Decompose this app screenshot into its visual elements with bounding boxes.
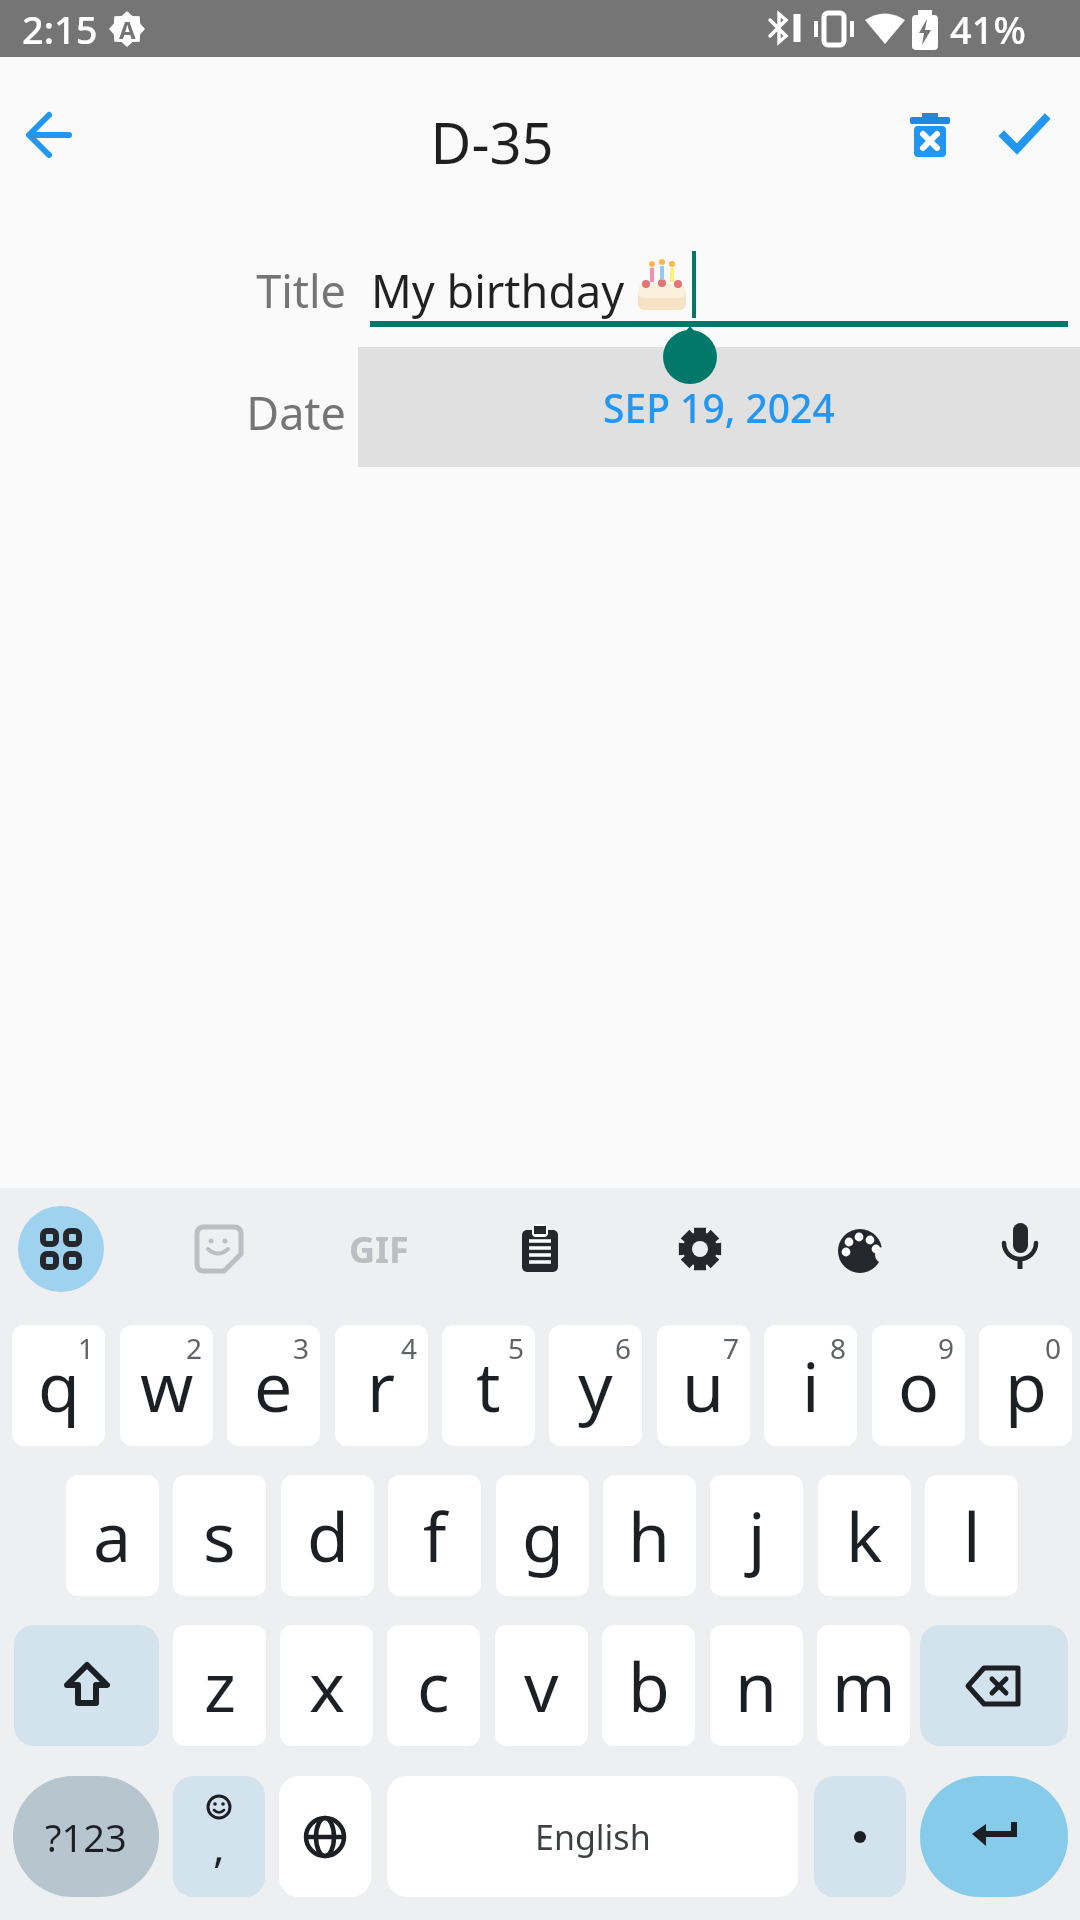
button[interactable] — [920, 1776, 1068, 1897]
button[interactable]: a — [66, 1475, 159, 1596]
staticText: q — [38, 1339, 80, 1432]
staticText: f — [423, 1489, 447, 1582]
staticText: j — [748, 1489, 766, 1582]
staticText: , — [213, 1815, 225, 1875]
button[interactable] — [14, 100, 84, 170]
staticText: d — [307, 1489, 349, 1582]
staticText: x — [309, 1639, 345, 1732]
button[interactable] — [990, 100, 1060, 170]
button[interactable]: , — [173, 1776, 265, 1897]
button[interactable] — [176, 1206, 262, 1292]
button[interactable]: m — [817, 1625, 910, 1746]
button[interactable]: e — [227, 1325, 320, 1446]
staticText: Title — [0, 260, 346, 321]
button[interactable] — [895, 100, 965, 170]
staticText: v — [524, 1639, 559, 1732]
staticText: b — [628, 1639, 670, 1732]
button[interactable]: p — [979, 1325, 1072, 1446]
staticText: e — [254, 1339, 293, 1432]
button[interactable]: k — [818, 1475, 911, 1596]
button[interactable] — [817, 1206, 903, 1292]
staticText: i — [802, 1339, 820, 1432]
staticText: 1 — [78, 1329, 95, 1367]
button[interactable]: x — [280, 1625, 373, 1746]
staticText: c — [417, 1639, 450, 1732]
staticText: 6 — [615, 1329, 632, 1367]
staticText: 8 — [830, 1329, 847, 1367]
staticText: y — [578, 1339, 613, 1432]
button[interactable] — [814, 1776, 906, 1897]
button[interactable]: q — [12, 1325, 105, 1446]
staticText: 41% — [950, 3, 1026, 55]
staticText: a — [93, 1489, 132, 1582]
staticText: n — [735, 1639, 778, 1732]
button[interactable]: SEP 19, 2024 — [358, 347, 1080, 467]
staticText: r — [367, 1339, 396, 1432]
button[interactable]: ?123 — [13, 1776, 159, 1897]
button[interactable]: b — [602, 1625, 695, 1746]
button[interactable]: j — [710, 1475, 803, 1596]
button[interactable] — [497, 1206, 583, 1292]
staticText: m — [832, 1639, 896, 1732]
button[interactable]: English — [387, 1776, 798, 1897]
button[interactable]: v — [495, 1625, 588, 1746]
button[interactable]: n — [710, 1625, 803, 1746]
staticText: 3 — [293, 1329, 310, 1367]
button[interactable]: t — [442, 1325, 535, 1446]
button[interactable]: s — [173, 1475, 266, 1596]
button[interactable]: h — [603, 1475, 696, 1596]
staticText: 5 — [508, 1329, 525, 1367]
staticText: k — [846, 1489, 883, 1582]
staticText: h — [628, 1489, 671, 1582]
staticText: 4 — [401, 1329, 418, 1367]
staticText: A — [119, 13, 136, 46]
staticText: u — [682, 1339, 725, 1432]
button[interactable]: u — [657, 1325, 750, 1446]
staticText: D-35 — [0, 104, 984, 180]
staticText: o — [898, 1339, 940, 1432]
button[interactable]: c — [387, 1625, 480, 1746]
button[interactable]: o — [872, 1325, 965, 1446]
staticText: 0 — [1045, 1329, 1062, 1367]
staticText: z — [204, 1639, 236, 1732]
button[interactable]: r — [335, 1325, 428, 1446]
button[interactable] — [920, 1625, 1068, 1746]
staticText: s — [203, 1489, 236, 1582]
button[interactable]: d — [281, 1475, 374, 1596]
staticText: 7 — [723, 1329, 740, 1367]
button[interactable]: GIF — [336, 1206, 422, 1292]
staticText: g — [522, 1489, 564, 1582]
button[interactable]: z — [173, 1625, 266, 1746]
button[interactable] — [18, 1206, 104, 1292]
staticText: GIF — [349, 1225, 409, 1274]
staticText: 9 — [938, 1329, 955, 1367]
staticText: SEP 19, 2024 — [603, 381, 835, 434]
button[interactable]: y — [549, 1325, 642, 1446]
staticText: 2:15 — [22, 3, 98, 55]
staticText: p — [1005, 1339, 1047, 1432]
staticText: w — [140, 1339, 194, 1432]
button[interactable] — [657, 1206, 743, 1292]
button[interactable] — [977, 1206, 1063, 1292]
button[interactable]: i — [764, 1325, 857, 1446]
staticText: Date — [0, 382, 346, 443]
button[interactable]: l — [925, 1475, 1018, 1596]
button[interactable]: f — [388, 1475, 481, 1596]
staticText: My birthday — [371, 260, 625, 321]
staticText: 2 — [186, 1329, 203, 1367]
button[interactable]: w — [120, 1325, 213, 1446]
staticText: t — [476, 1339, 501, 1432]
button[interactable] — [14, 1625, 159, 1746]
button[interactable] — [279, 1776, 371, 1897]
staticText: l — [963, 1489, 981, 1582]
staticText: ?123 — [45, 1811, 127, 1863]
button[interactable]: g — [496, 1475, 589, 1596]
staticText: English — [535, 1814, 651, 1860]
